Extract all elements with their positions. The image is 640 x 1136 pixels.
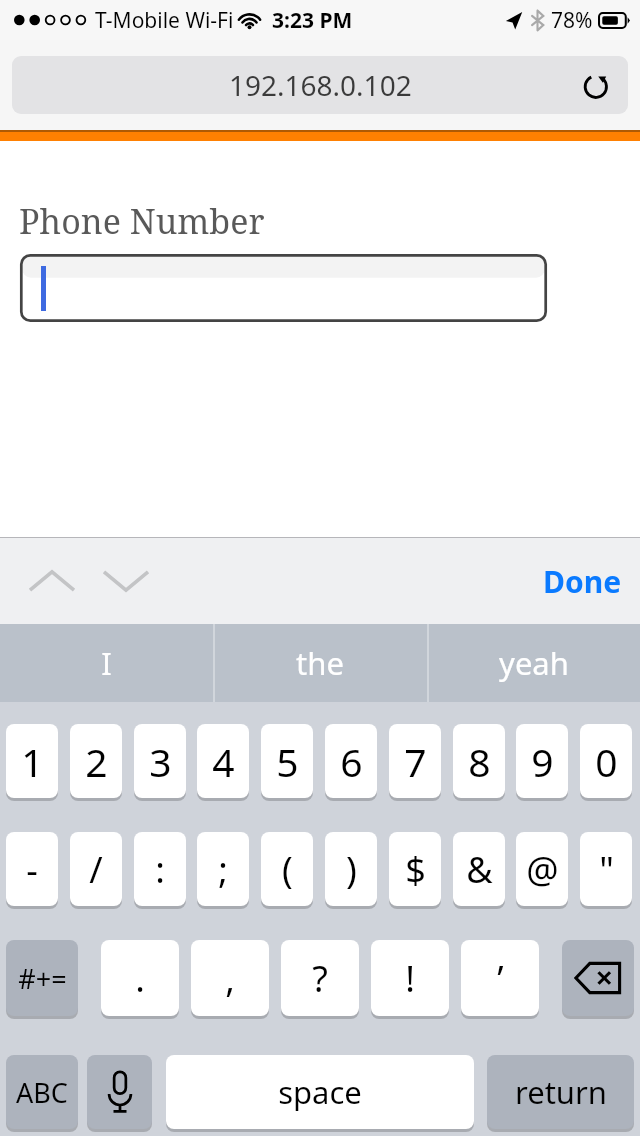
staticText: ABC bbox=[16, 1074, 68, 1111]
button[interactable]: the bbox=[213, 624, 427, 702]
button[interactable]: Done bbox=[537, 553, 628, 610]
button[interactable]: 1 bbox=[6, 724, 58, 798]
staticText: . bbox=[135, 954, 145, 1003]
staticText: 6 bbox=[340, 735, 363, 788]
button[interactable]: 6 bbox=[325, 724, 377, 798]
button[interactable]: ; bbox=[197, 832, 249, 906]
button[interactable]: ABC bbox=[6, 1055, 78, 1129]
staticText: : bbox=[155, 845, 165, 894]
staticText: T-Mobile Wi-Fi bbox=[95, 6, 234, 35]
staticText: , bbox=[225, 954, 235, 1003]
button[interactable]: - bbox=[6, 832, 58, 906]
staticText: Done bbox=[543, 561, 622, 602]
button[interactable]: $ bbox=[389, 832, 441, 906]
button[interactable]: space bbox=[166, 1055, 474, 1129]
button[interactable]: 7 bbox=[389, 724, 441, 798]
button[interactable]: ! bbox=[371, 940, 449, 1016]
staticText: 8 bbox=[468, 735, 491, 788]
button[interactable]: & bbox=[453, 832, 505, 906]
staticText: " bbox=[599, 845, 614, 894]
staticText: 4 bbox=[212, 735, 235, 788]
staticText: & bbox=[466, 845, 493, 894]
button[interactable]: , bbox=[191, 940, 269, 1016]
staticText: 192.168.0.102 bbox=[229, 66, 412, 104]
staticText: 3 bbox=[149, 735, 172, 788]
staticText: ) bbox=[346, 845, 357, 894]
staticText: ; bbox=[218, 845, 228, 894]
button[interactable]: #+= bbox=[6, 940, 78, 1016]
button[interactable]: 4 bbox=[197, 724, 249, 798]
staticText: space bbox=[278, 1071, 362, 1113]
staticText: return bbox=[515, 1071, 607, 1113]
staticText: @ bbox=[526, 845, 559, 894]
staticText: - bbox=[26, 845, 38, 894]
staticText: 1 bbox=[21, 735, 44, 788]
staticText: $ bbox=[405, 845, 426, 894]
button[interactable]: return bbox=[487, 1055, 634, 1129]
button[interactable]: Reload bbox=[576, 64, 618, 106]
staticText: ( bbox=[282, 845, 293, 894]
button[interactable]: 8 bbox=[453, 724, 505, 798]
staticText: 3:23 PM bbox=[272, 6, 353, 35]
staticText: I bbox=[101, 642, 112, 684]
button[interactable]: @ bbox=[516, 832, 568, 906]
staticText: 0 bbox=[595, 735, 618, 788]
staticText: #+= bbox=[18, 960, 67, 997]
staticText: the bbox=[296, 642, 344, 684]
staticText: / bbox=[89, 845, 103, 894]
button[interactable]: ? bbox=[281, 940, 359, 1016]
button[interactable]: " bbox=[580, 832, 632, 906]
staticText: 9 bbox=[531, 735, 554, 788]
button[interactable]: 5 bbox=[261, 724, 313, 798]
button[interactable]: Delete bbox=[562, 940, 634, 1016]
button[interactable]: ) bbox=[325, 832, 377, 906]
button[interactable]: Previous field bbox=[20, 549, 84, 613]
button[interactable]: 2 bbox=[70, 724, 122, 798]
button[interactable]: Next field bbox=[94, 549, 158, 613]
staticText: ’ bbox=[497, 954, 504, 1003]
staticText: 2 bbox=[85, 735, 108, 788]
staticText: ? bbox=[312, 954, 328, 1003]
button[interactable]: ( bbox=[261, 832, 313, 906]
staticText: Phone Number bbox=[19, 198, 265, 244]
button[interactable]: 3 bbox=[134, 724, 186, 798]
staticText: 5 bbox=[276, 735, 299, 788]
staticText: yeah bbox=[499, 642, 569, 684]
button[interactable]: . bbox=[101, 940, 179, 1016]
button[interactable]: 9 bbox=[516, 724, 568, 798]
button[interactable]: 0 bbox=[580, 724, 632, 798]
button[interactable]: I bbox=[0, 624, 213, 702]
staticText: 7 bbox=[404, 735, 427, 788]
button[interactable]: : bbox=[134, 832, 186, 906]
button[interactable]: ’ bbox=[461, 940, 539, 1016]
button[interactable]: yeah bbox=[427, 624, 640, 702]
button[interactable]: 192.168.0.102 bbox=[12, 56, 628, 114]
staticText: ! bbox=[405, 954, 415, 1003]
button[interactable]: Dictation bbox=[87, 1055, 152, 1129]
staticText: 78% bbox=[551, 6, 593, 35]
button[interactable]: / bbox=[70, 832, 122, 906]
